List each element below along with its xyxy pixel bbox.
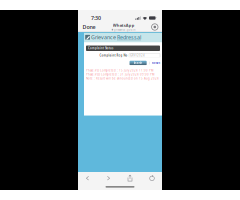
staticText: Grievance	[91, 34, 116, 41]
staticText: Redressal	[117, 34, 141, 41]
button[interactable]: Search	[130, 61, 147, 65]
staticText: WhatsApp	[113, 23, 135, 28]
staticText: Phase-VII Completed : 15 July 2024 11:00…	[86, 69, 153, 72]
button[interactable]: More	[151, 23, 159, 31]
staticText: Reset	[152, 61, 160, 65]
button[interactable]: Forward	[106, 175, 111, 181]
staticText: Complaint Status	[88, 46, 113, 50]
staticText: Done	[82, 23, 95, 31]
staticText: 7:30	[91, 14, 101, 22]
staticText: Phase-VIII Completed : 31 July 2024 09:0…	[86, 73, 154, 76]
button[interactable]: Reset	[152, 61, 160, 65]
staticText: grievance.gov.in	[114, 28, 136, 31]
button[interactable]: Share	[127, 174, 133, 181]
button[interactable]: Reload	[149, 175, 155, 181]
staticText: Note : Result will be announced on 15 Au…	[86, 77, 159, 80]
button[interactable]: Done	[81, 22, 97, 32]
staticText: GRV/2024	[130, 54, 145, 57]
staticText: Complaint Reg No	[99, 54, 127, 57]
button[interactable]: Back	[85, 175, 90, 181]
staticText: Search	[134, 61, 143, 65]
